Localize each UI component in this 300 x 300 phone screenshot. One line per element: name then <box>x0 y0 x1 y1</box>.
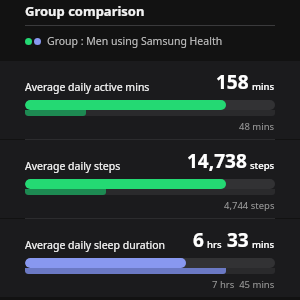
staticText: 48 mins <box>239 120 275 133</box>
staticText: 6 <box>193 227 204 253</box>
staticText: mins <box>252 80 275 93</box>
button[interactable]: Average daily active mins <box>0 61 300 139</box>
staticText: Average daily steps <box>25 159 121 173</box>
staticText: Group : Men using Samsung Health <box>47 34 223 48</box>
staticText: 158 <box>216 69 249 95</box>
staticText: 4,744 steps <box>224 199 275 212</box>
staticText: Group comparison <box>25 2 145 20</box>
staticText: steps <box>250 159 275 172</box>
staticText: mins <box>252 238 275 251</box>
button[interactable]: Group : Men using Samsung Health <box>0 33 300 49</box>
staticText: hrs <box>207 238 222 251</box>
staticText: Average daily sleep duration <box>25 238 166 252</box>
staticText: 7 hrs 45 mins <box>212 278 275 291</box>
button[interactable]: Average daily steps <box>0 140 300 218</box>
staticText: 14,738 <box>187 148 247 174</box>
staticText: Average daily active mins <box>25 80 150 94</box>
staticText: 33 <box>227 227 249 253</box>
button[interactable]: Average daily sleep duration <box>0 219 300 297</box>
